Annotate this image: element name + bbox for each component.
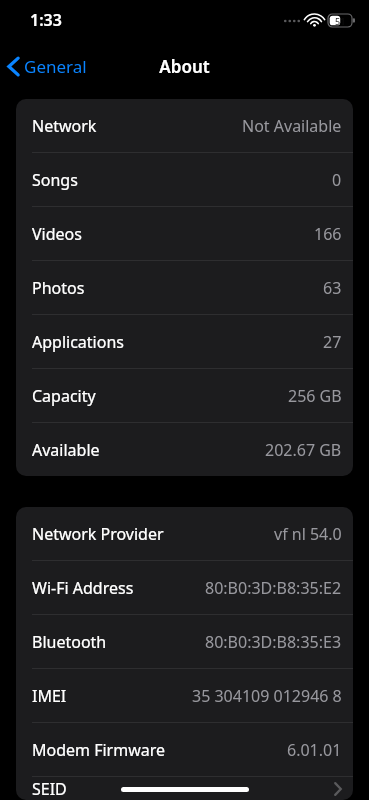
staticText: Songs xyxy=(32,169,78,191)
staticText: 6.01.01 xyxy=(287,739,342,761)
staticText: 51 xyxy=(335,15,346,27)
staticText: General xyxy=(24,55,87,78)
other: Open xyxy=(334,782,342,796)
staticText: Capacity xyxy=(32,385,96,407)
staticText: 80:B0:3D:B8:35:E3 xyxy=(205,631,342,653)
staticText: Bluetooth xyxy=(32,631,107,653)
button[interactable]: Network xyxy=(16,99,353,152)
staticText: 35 304109 012946 8 xyxy=(192,685,342,707)
button[interactable]: Wi-Fi Address xyxy=(16,561,353,614)
button[interactable]: Applications xyxy=(16,315,353,368)
staticText: 63 xyxy=(323,277,342,299)
staticText: SEID xyxy=(32,778,67,800)
button[interactable]: Videos xyxy=(16,207,353,260)
button[interactable]: Available xyxy=(16,423,353,476)
button[interactable]: Capacity xyxy=(16,369,353,422)
staticText: About xyxy=(159,55,210,78)
staticText: Modem Firmware xyxy=(32,739,166,761)
staticText: 166 xyxy=(314,223,342,245)
button[interactable]: Modem Firmware xyxy=(16,723,353,776)
staticText: 27 xyxy=(323,331,342,353)
staticText: 0 xyxy=(332,169,342,191)
button[interactable]: Network Provider xyxy=(16,507,353,560)
button[interactable]: General xyxy=(0,49,97,84)
button[interactable]: Bluetooth xyxy=(16,615,353,668)
staticText: Network Provider xyxy=(32,523,164,545)
button[interactable]: IMEI xyxy=(16,669,353,722)
staticText: Not Available xyxy=(242,115,342,137)
button[interactable]: Photos xyxy=(16,261,353,314)
staticText: Available xyxy=(32,439,100,461)
button[interactable]: Songs xyxy=(16,153,353,206)
staticText: IMEI xyxy=(32,685,67,707)
staticText: 80:B0:3D:B8:35:E2 xyxy=(205,577,342,599)
staticText: vf nl 54.0 xyxy=(274,523,342,545)
staticText: 256 GB xyxy=(288,385,342,407)
staticText: Videos xyxy=(32,223,82,245)
staticText: Photos xyxy=(32,277,85,299)
staticText: Applications xyxy=(32,331,124,353)
button[interactable]: SEID xyxy=(16,777,353,800)
staticText: Network xyxy=(32,115,97,137)
staticText: 1:33 xyxy=(30,9,62,31)
staticText: Wi-Fi Address xyxy=(32,577,134,599)
staticText: 202.67 GB xyxy=(265,439,342,461)
